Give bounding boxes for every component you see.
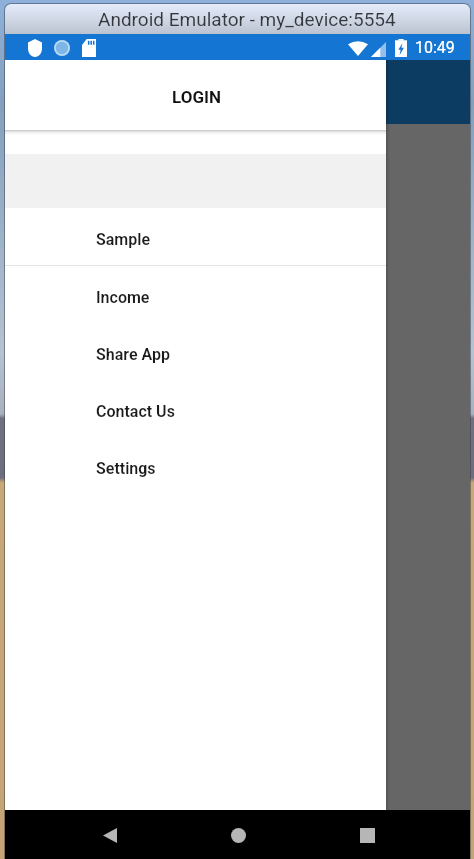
button[interactable]: Income (5, 266, 386, 323)
staticText: Income (96, 288, 150, 307)
staticText: 10:49 (415, 38, 455, 57)
button[interactable]: Share App (5, 323, 386, 380)
staticText: Contact Us (96, 402, 175, 421)
staticText: Settings (96, 459, 156, 478)
button[interactable]: Sample (5, 208, 386, 265)
button[interactable]: Recents (314, 810, 420, 859)
staticText: LOGIN (172, 87, 221, 107)
button[interactable]: Contact Us (5, 380, 386, 437)
button[interactable]: Settings (5, 437, 386, 494)
button[interactable]: Home (185, 810, 291, 859)
button[interactable]: Back (57, 810, 163, 859)
staticText: Sample (96, 230, 151, 249)
staticText: Android Emulator - my_device:5554 (98, 8, 396, 30)
staticText: Share App (96, 345, 170, 364)
